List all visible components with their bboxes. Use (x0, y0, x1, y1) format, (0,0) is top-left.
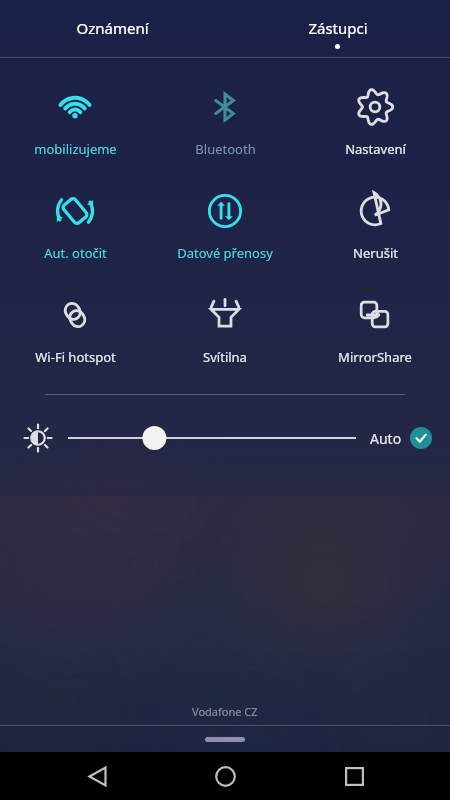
staticText: Oznámení (76, 18, 149, 38)
staticText: Wi-Fi hotspot (35, 348, 116, 366)
staticText: mobilizujeme (34, 140, 117, 158)
button[interactable]: Datové přenosy (150, 184, 300, 266)
button[interactable]: Bluetooth (150, 80, 300, 162)
button[interactable]: Oznámení (0, 0, 225, 44)
button[interactable]: Zástupci (225, 0, 450, 49)
staticText: Datové přenosy (177, 244, 273, 262)
button[interactable]: Brightness (18, 418, 58, 458)
button[interactable]: Auto (370, 427, 432, 449)
button[interactable]: Wi-Fi hotspot (0, 288, 150, 370)
staticText: MirrorShare (338, 348, 412, 366)
staticText: Bluetooth (195, 140, 256, 158)
button[interactable]: Svítilna (150, 288, 300, 370)
button[interactable]: Back (65, 752, 129, 800)
staticText: Vodafone CZ (192, 704, 258, 719)
button[interactable]: MirrorShare (300, 288, 450, 370)
button[interactable]: Home (193, 752, 257, 800)
staticText: Zástupci (308, 18, 368, 38)
staticText: Nerušit (353, 244, 398, 262)
button[interactable]: Nerušit (300, 184, 450, 266)
button[interactable]: Close panel (0, 726, 450, 752)
staticText: Svítilna (203, 348, 247, 366)
button[interactable]: Brightness slider (68, 418, 356, 458)
button[interactable]: Aut. otočit (0, 184, 150, 266)
staticText: Auto (370, 429, 402, 448)
button[interactable]: mobilizujeme (0, 80, 150, 162)
staticText: Aut. otočit (44, 244, 107, 262)
staticText: Nastavení (345, 140, 406, 158)
button[interactable]: Recents (322, 752, 386, 800)
button[interactable]: Nastavení (300, 80, 450, 162)
